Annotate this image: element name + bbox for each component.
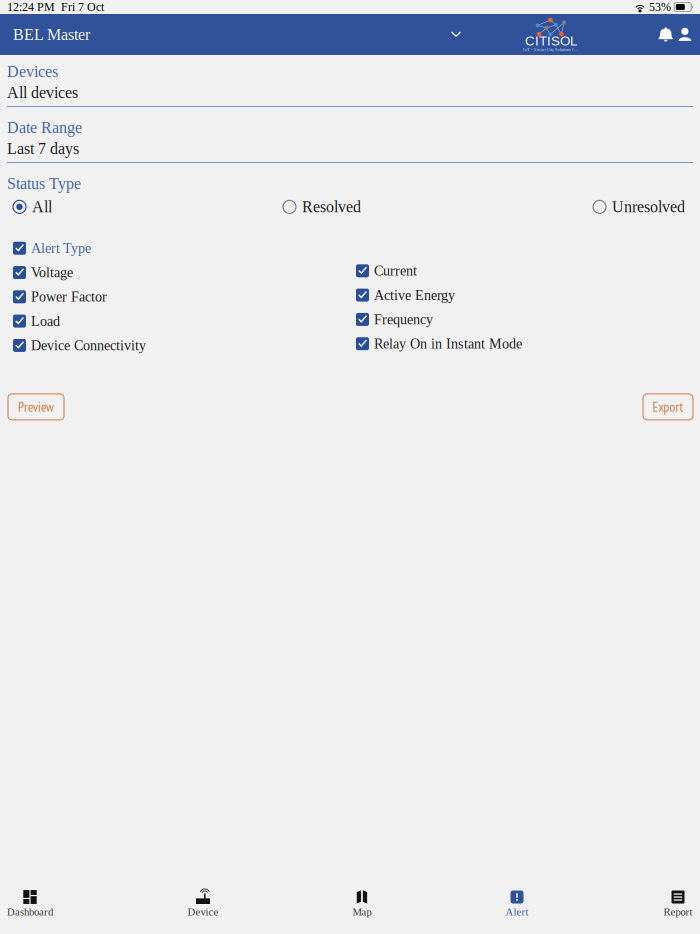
- staticText: Load: [31, 313, 60, 329]
- staticText: Date Range: [7, 119, 82, 136]
- button[interactable]: Power Factor: [13, 290, 356, 303]
- staticText: 12:24 PM: [7, 0, 55, 14]
- button[interactable]: Load: [13, 315, 356, 328]
- button[interactable]: Export: [643, 394, 693, 420]
- button[interactable]: All: [13, 198, 283, 216]
- button[interactable]: Notifications: [655, 22, 673, 46]
- staticText: Relay On in Instant Mode: [374, 336, 522, 352]
- staticText: Resolved: [302, 198, 361, 216]
- button[interactable]: Preview: [8, 394, 64, 420]
- staticText: IoT - Smart City Solutions from Bajaj: [523, 47, 579, 52]
- staticText: Device Connectivity: [31, 338, 146, 353]
- staticText: Fri 7 Oct: [55, 0, 104, 14]
- button[interactable]: Current: [356, 264, 693, 277]
- button[interactable]: Resolved: [283, 198, 593, 216]
- staticText: Device: [187, 906, 218, 918]
- button[interactable]: Active Energy: [356, 289, 693, 302]
- staticText: Frequency: [374, 312, 433, 327]
- button[interactable]: Alert: [420, 890, 560, 917]
- button[interactable]: Relay On in Instant Mode: [356, 337, 693, 350]
- button[interactable]: Dashboard: [0, 890, 140, 917]
- staticText: Last 7 days: [7, 140, 79, 157]
- staticText: All: [32, 198, 52, 216]
- staticText: Preview: [18, 398, 54, 416]
- staticText: 53%: [646, 0, 671, 14]
- button[interactable]: Expand dropdown: [444, 22, 468, 46]
- button[interactable]: Alert Type: [13, 242, 356, 255]
- button[interactable]: Unresolved: [593, 198, 693, 216]
- button[interactable]: Device Connectivity: [13, 339, 356, 352]
- staticText: Active Energy: [374, 287, 455, 303]
- button[interactable]: Device: [140, 890, 280, 917]
- staticText: Export: [652, 398, 683, 416]
- staticText: Power Factor: [31, 289, 107, 305]
- staticText: CITISOL: [525, 34, 577, 48]
- staticText: Unresolved: [612, 198, 685, 216]
- staticText: All devices: [7, 84, 78, 101]
- staticText: Report: [663, 906, 692, 918]
- staticText: Alert Type: [31, 240, 91, 256]
- staticText: BEL Master: [13, 26, 90, 43]
- button[interactable]: Map: [280, 890, 420, 917]
- button[interactable]: Voltage: [13, 266, 356, 279]
- staticText: Current: [374, 263, 417, 279]
- staticText: Devices: [7, 63, 58, 80]
- staticText: Map: [352, 906, 371, 918]
- staticText: Status Type: [7, 175, 81, 192]
- staticText: Voltage: [31, 265, 73, 280]
- staticText: Alert: [505, 906, 528, 918]
- button[interactable]: Report: [560, 890, 700, 917]
- button[interactable]: Frequency: [356, 313, 693, 326]
- button[interactable]: Account: [673, 22, 697, 46]
- staticText: Dashboard: [7, 906, 53, 918]
